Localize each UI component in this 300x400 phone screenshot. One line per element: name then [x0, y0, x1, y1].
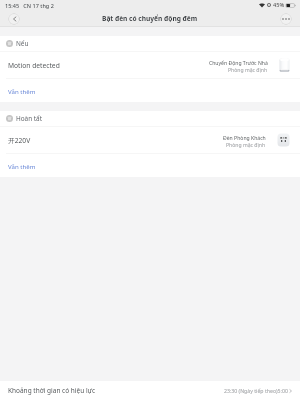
staticText: Phòng mặc định: [226, 142, 266, 149]
staticText: Nếu: [16, 39, 29, 48]
staticText: Motion detected: [8, 61, 60, 70]
staticText: Vẫn thêm: [8, 162, 36, 170]
staticText: 45%: [273, 1, 285, 9]
staticText: Chuyển Động Trước Nhà: [209, 60, 268, 67]
staticText: Bật đèn có chuyển động đêm: [102, 14, 198, 23]
button[interactable]: Khoảng thời gian có hiệu lực: [0, 381, 300, 400]
staticText: Đèn Phòng Khách: [223, 135, 266, 142]
button[interactable]: Back: [8, 13, 20, 25]
staticText: 23:30 (Ngày tiếp theo)5:00: [224, 387, 288, 394]
button[interactable]: Motion detected: [0, 52, 300, 78]
staticText: Khoảng thời gian có hiệu lực: [8, 386, 96, 395]
staticText: 15:45 CN 17 thg 2: [5, 2, 54, 9]
staticText: 开220V: [8, 136, 31, 145]
button[interactable]: 开220V: [0, 127, 300, 153]
staticText: Phòng mặc định: [228, 67, 268, 74]
button[interactable]: More options: [280, 13, 292, 25]
button[interactable]: Vẫn thêm: [0, 79, 300, 102]
staticText: Hoàn tất: [16, 114, 42, 123]
staticText: Vẫn thêm: [8, 87, 36, 95]
button[interactable]: Vẫn thêm: [0, 154, 300, 177]
